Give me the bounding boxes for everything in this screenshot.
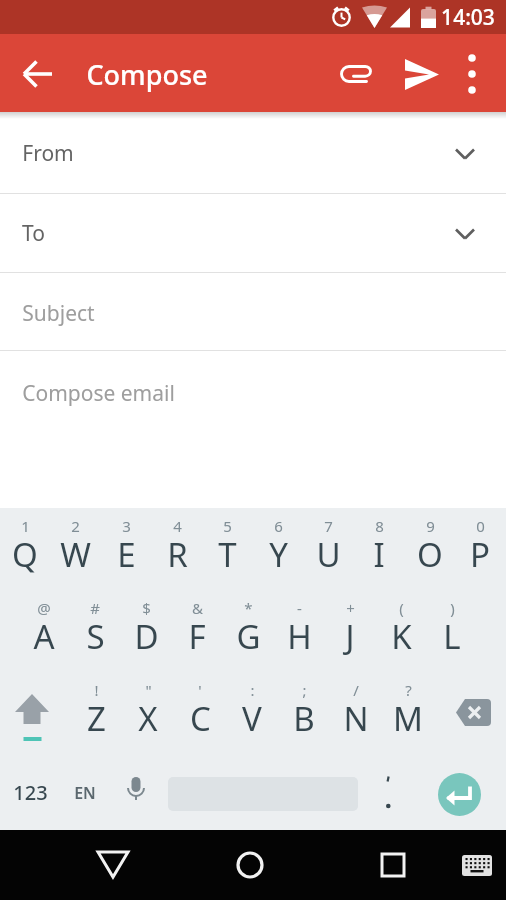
button[interactable]: & — [172, 590, 222, 672]
staticText: 0 — [476, 516, 485, 536]
staticText: Y — [269, 532, 288, 577]
button[interactable]: ( — [376, 590, 426, 672]
button[interactable]: / — [331, 672, 381, 755]
button[interactable]: ; — [279, 672, 329, 755]
button[interactable]: # — [70, 590, 120, 672]
staticText: Compose email — [22, 379, 175, 407]
button[interactable] — [0, 351, 506, 508]
staticText: J — [345, 614, 355, 659]
button[interactable]: : — [227, 672, 277, 755]
button[interactable]: + — [325, 590, 375, 672]
button[interactable] — [365, 755, 411, 830]
staticText: G — [236, 614, 261, 659]
staticText: - — [297, 598, 302, 618]
staticText: ! — [94, 680, 99, 700]
button[interactable] — [83, 835, 143, 895]
staticText: From — [22, 139, 74, 167]
staticText: ; — [302, 680, 307, 700]
button[interactable]: 2 — [50, 508, 100, 590]
staticText: / — [353, 680, 359, 700]
button[interactable]: ! — [71, 672, 121, 755]
staticText: F — [188, 614, 206, 659]
button[interactable] — [438, 773, 481, 816]
staticText: Subject — [22, 299, 95, 327]
button[interactable] — [337, 56, 375, 92]
staticText: 9 — [426, 516, 435, 536]
staticText: K — [391, 614, 412, 659]
staticText: D — [134, 614, 159, 659]
button[interactable]: 7 — [303, 508, 353, 590]
staticText: M — [393, 696, 423, 741]
button[interactable]: 4 — [152, 508, 202, 590]
button[interactable] — [0, 119, 506, 193]
staticText: 4 — [173, 516, 182, 536]
button[interactable]: 1 — [0, 508, 50, 590]
staticText: L — [443, 614, 461, 659]
staticText: Compose — [86, 56, 208, 92]
staticText: $ — [142, 598, 151, 618]
button[interactable]: - — [274, 590, 324, 672]
staticText: C — [190, 696, 211, 741]
staticText: H — [287, 614, 312, 659]
button[interactable]: EN — [60, 755, 110, 830]
staticText: A — [33, 614, 55, 659]
button[interactable]: ) — [427, 590, 477, 672]
staticText: B — [293, 696, 315, 741]
staticText: 5 — [223, 516, 232, 536]
staticText: O — [417, 532, 443, 577]
staticText: X — [138, 696, 158, 741]
staticText: ' — [198, 680, 202, 700]
button[interactable] — [0, 273, 506, 350]
button[interactable] — [440, 676, 506, 752]
staticText: Z — [87, 696, 106, 741]
staticText: & — [192, 598, 203, 618]
button[interactable] — [4, 676, 64, 752]
button[interactable] — [0, 194, 506, 272]
staticText: " — [145, 680, 152, 700]
staticText: 6 — [274, 516, 283, 536]
button[interactable]: 8 — [354, 508, 404, 590]
staticText: 3 — [122, 516, 131, 536]
button[interactable] — [363, 835, 423, 895]
staticText: E — [117, 532, 136, 577]
staticText: S — [86, 614, 105, 659]
staticText: ( — [399, 598, 404, 618]
staticText: ? — [405, 680, 412, 700]
staticText: P — [470, 532, 490, 577]
button[interactable]: " — [123, 672, 173, 755]
staticText: V — [242, 696, 262, 741]
button[interactable]: 0 — [455, 508, 505, 590]
button[interactable]: 9 — [405, 508, 455, 590]
staticText: EN — [74, 782, 96, 804]
staticText: 2 — [71, 516, 80, 536]
button[interactable]: @ — [19, 590, 69, 672]
button[interactable]: 5 — [202, 508, 252, 590]
staticText: N — [343, 696, 369, 741]
staticText: : — [250, 680, 255, 700]
staticText: @ — [37, 598, 51, 618]
button[interactable]: ' — [175, 672, 225, 755]
button[interactable] — [110, 755, 162, 830]
button[interactable] — [454, 53, 494, 95]
staticText: R — [167, 532, 188, 577]
button[interactable] — [18, 54, 58, 94]
button[interactable]: * — [223, 590, 273, 672]
staticText: Q — [12, 532, 38, 577]
staticText: + — [346, 598, 355, 618]
staticText: ) — [450, 598, 455, 618]
button[interactable]: ? — [383, 672, 433, 755]
staticText: * — [244, 598, 253, 618]
button[interactable]: 3 — [101, 508, 151, 590]
button[interactable]: $ — [121, 590, 171, 672]
button[interactable] — [458, 843, 498, 887]
staticText: 7 — [324, 516, 333, 536]
button[interactable]: 6 — [253, 508, 303, 590]
button[interactable]: 123 — [4, 755, 56, 830]
button[interactable] — [403, 57, 441, 92]
staticText: 14:03 — [441, 3, 495, 32]
staticText: 123 — [13, 779, 48, 806]
staticText: 8 — [375, 516, 384, 536]
button[interactable] — [220, 835, 280, 895]
staticText: W — [60, 532, 91, 577]
